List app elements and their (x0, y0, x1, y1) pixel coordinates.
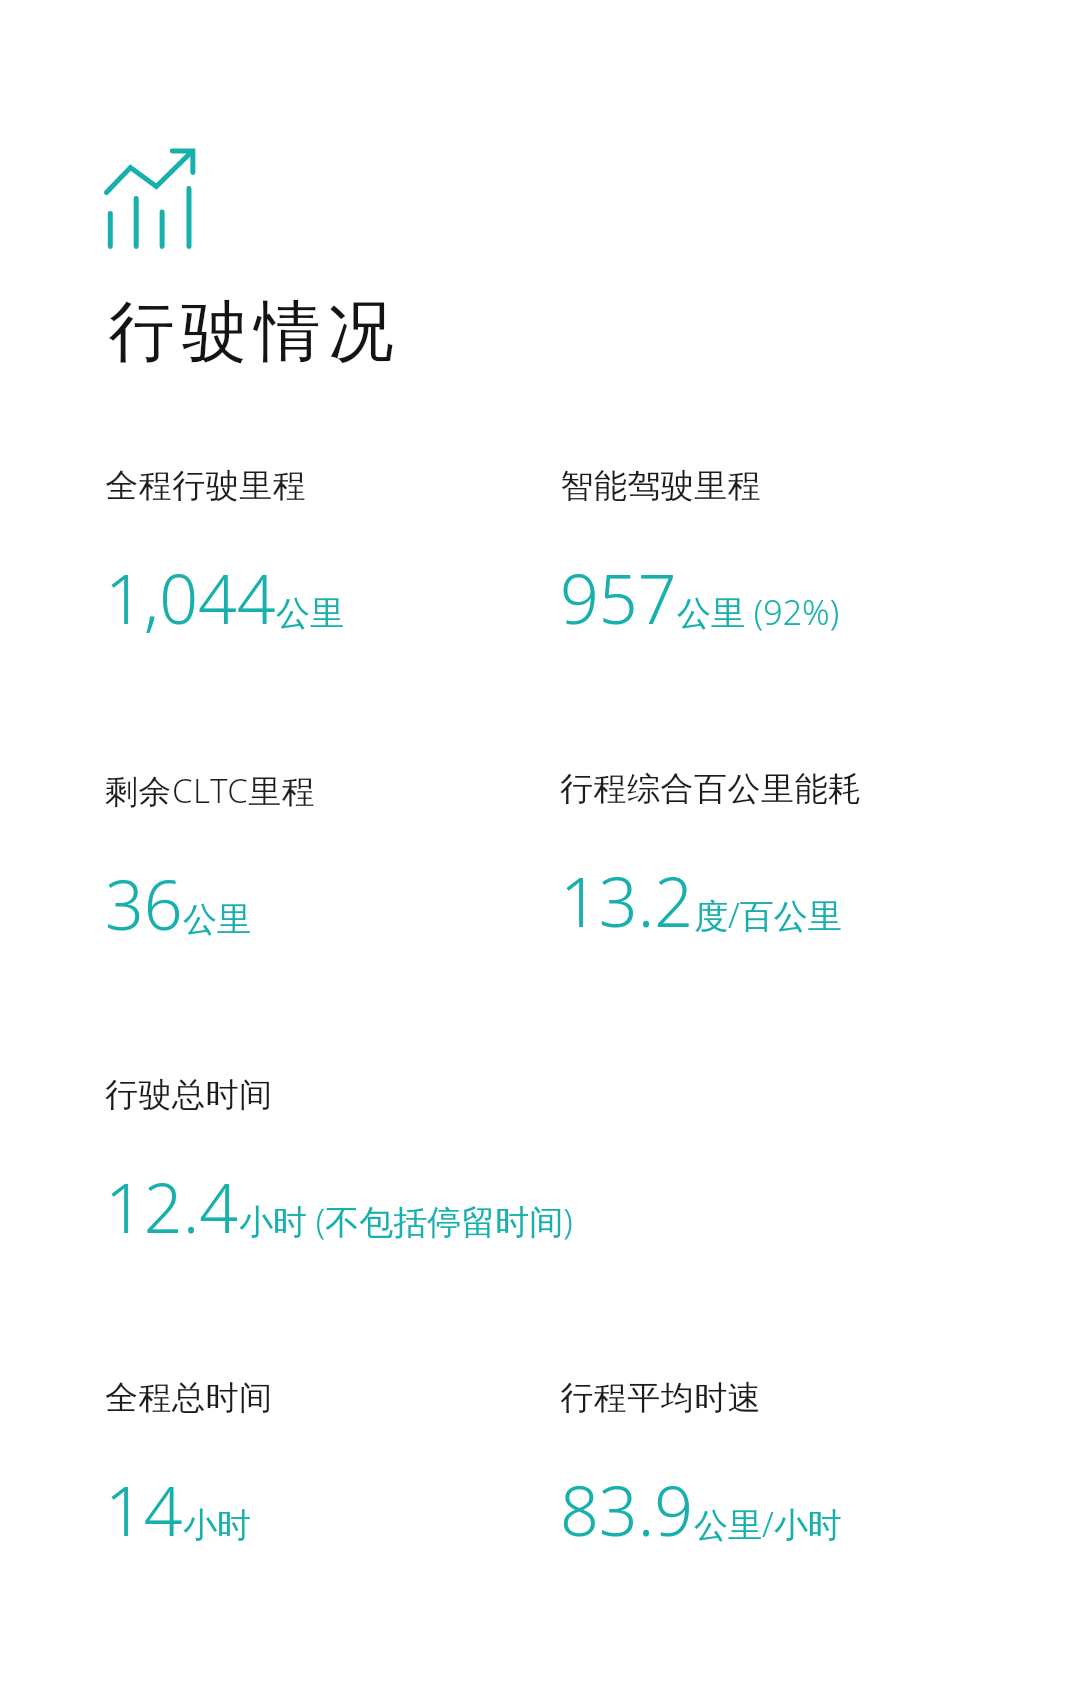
button[interactable]: 行程平均时速 (560, 1377, 842, 1556)
staticText: 公里 (92%) (677, 589, 840, 635)
staticText: 83.9 (560, 1463, 694, 1556)
staticText: 剩余CLTC里程 (105, 768, 316, 813)
button[interactable]: 行程综合百公里能耗 (560, 768, 862, 947)
staticText: 行程综合百公里能耗 (560, 768, 862, 810)
staticText: 公里 (276, 592, 344, 635)
staticText: 14 (105, 1463, 183, 1556)
staticText: 12.4 (105, 1160, 239, 1253)
staticText: 小时 (183, 1504, 251, 1547)
staticText: 行驶情况 (105, 290, 397, 373)
staticText: 13.2 (560, 854, 694, 947)
staticText: 智能驾驶里程 (560, 465, 761, 507)
button[interactable]: 剩余CLTC里程 (105, 768, 560, 950)
staticText: 行驶总时间 (105, 1074, 273, 1116)
staticText: 1,044 (105, 551, 276, 644)
staticText: 行程平均时速 (560, 1377, 761, 1419)
staticText: 公里/小时 (694, 1501, 842, 1547)
staticText: 36 (105, 857, 183, 950)
button[interactable]: 全程行驶里程 (105, 465, 560, 644)
button[interactable]: 智能驾驶里程 (560, 465, 840, 644)
staticText: 全程总时间 (105, 1377, 273, 1419)
other: Driving statistics (105, 148, 201, 248)
staticText: 公里 (183, 898, 251, 941)
button[interactable]: 行驶总时间 (105, 1074, 1056, 1253)
staticText: 小时 (不包括停留时间) (239, 1198, 573, 1244)
staticText: 全程行驶里程 (105, 465, 306, 507)
staticText: 度/百公里 (694, 892, 842, 938)
staticText: 957 (560, 551, 677, 644)
button[interactable]: 全程总时间 (105, 1377, 560, 1556)
